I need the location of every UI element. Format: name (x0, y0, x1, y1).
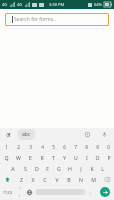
button[interactable]: 6 (59, 141, 70, 152)
button[interactable]: 8 (81, 141, 92, 152)
button[interactable]: G (53, 163, 64, 174)
staticText: O (95, 154, 100, 161)
button[interactable]: अ (4, 131, 13, 139)
button[interactable]: N (75, 174, 87, 185)
button[interactable]: J (75, 163, 86, 174)
staticText: 3:50 PM (49, 2, 65, 7)
button[interactable]: C (39, 174, 51, 185)
staticText: P (107, 154, 111, 161)
button[interactable]: 1 (0, 141, 12, 152)
button[interactable]: Voice input (100, 130, 109, 139)
staticText: . (90, 189, 92, 196)
button[interactable]: ° (15, 185, 24, 199)
button[interactable]: B (63, 174, 75, 185)
staticText: W (16, 154, 21, 161)
button[interactable]: A (7, 163, 19, 174)
staticText: H (68, 165, 72, 172)
staticText: N (79, 176, 83, 183)
button[interactable]: I (81, 152, 92, 163)
button[interactable]: Z (15, 174, 27, 185)
staticText: Y (63, 154, 66, 161)
button[interactable]: abc (18, 129, 35, 140)
button[interactable]: Keyboard settings (83, 130, 92, 139)
button[interactable]: ?123 (0, 185, 15, 199)
staticText: U (74, 154, 78, 161)
staticText: 0 (107, 144, 110, 150)
staticText: 5 (52, 144, 55, 150)
staticText: ° (19, 186, 21, 191)
button[interactable]: Shift (0, 174, 15, 185)
button[interactable]: 4 (36, 141, 48, 152)
button[interactable]: S (19, 163, 31, 174)
staticText: 2 (17, 144, 20, 150)
staticText: S (24, 165, 27, 172)
button[interactable]: D (31, 163, 42, 174)
staticText: Z (20, 176, 23, 183)
button[interactable]: H (64, 163, 75, 174)
button[interactable]: E (24, 152, 36, 163)
staticText: R (40, 154, 44, 161)
button[interactable]: V (51, 174, 63, 185)
staticText: ?123 (3, 189, 13, 195)
staticText: C (43, 176, 47, 183)
staticText: F (46, 165, 49, 172)
staticText: 4 (41, 144, 44, 150)
staticText: अ (6, 131, 11, 139)
staticText: J (80, 165, 82, 172)
button[interactable]: M (87, 174, 99, 185)
staticText: A (11, 165, 15, 172)
button[interactable]: 9 (92, 141, 103, 152)
button[interactable]: F (42, 163, 53, 174)
staticText: 9 (96, 144, 99, 150)
staticText: 6 (63, 144, 66, 150)
button[interactable]: 7 (70, 141, 81, 152)
button[interactable]: R (36, 152, 48, 163)
staticText: Search for forms.. (14, 16, 56, 23)
button[interactable]: O (92, 152, 103, 163)
staticText: G (57, 165, 61, 172)
staticText: T (52, 154, 55, 161)
staticText: E (29, 154, 32, 161)
staticText: D (35, 165, 39, 172)
staticText: 7 (74, 144, 77, 150)
button[interactable]: K (86, 163, 97, 174)
button[interactable]: X (27, 174, 39, 185)
staticText: L (101, 165, 104, 172)
staticText: 1 (5, 144, 8, 150)
button[interactable]: P (103, 152, 114, 163)
button[interactable]: Q (0, 152, 12, 163)
staticText: 3 (29, 144, 32, 150)
staticText: V (55, 176, 59, 183)
staticText: 4G (17, 2, 23, 7)
staticText: Q (4, 154, 9, 161)
button[interactable]: Search for forms.. (5, 13, 109, 26)
button[interactable]: Y (59, 152, 70, 163)
button[interactable]: 3 (24, 141, 36, 152)
staticText: abc (22, 131, 31, 138)
staticText: 4G (2, 2, 8, 7)
button[interactable]: Backspace (99, 174, 114, 185)
button[interactable]: 0 (103, 141, 114, 152)
button[interactable]: 5 (48, 141, 59, 152)
staticText: K (90, 165, 94, 172)
button[interactable]: T (48, 152, 59, 163)
staticText: 64% (94, 2, 102, 7)
staticText: I (86, 154, 88, 161)
staticText: 8 (85, 144, 88, 150)
staticText: X (31, 176, 35, 183)
staticText: , (19, 191, 21, 198)
button[interactable]: Change language (24, 185, 35, 199)
button[interactable]: . (86, 185, 96, 199)
button[interactable]: 2 (12, 141, 24, 152)
button[interactable]: L (97, 163, 108, 174)
staticText: B (67, 176, 71, 183)
button[interactable]: U (70, 152, 81, 163)
button[interactable]: W (12, 152, 24, 163)
staticText: M (91, 176, 96, 183)
button[interactable]: Search (100, 187, 110, 197)
